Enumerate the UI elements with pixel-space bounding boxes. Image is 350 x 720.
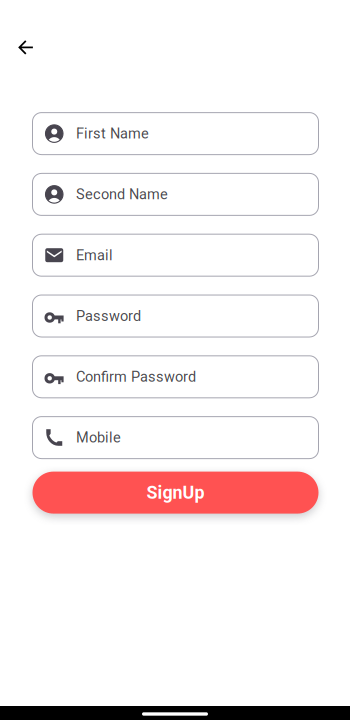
staticText: Second Name	[76, 186, 168, 203]
button[interactable]: Second Name	[32, 173, 318, 215]
staticText: Password	[76, 307, 141, 324]
staticText: First Name	[76, 125, 149, 142]
button[interactable]: Confirm Password	[32, 356, 318, 398]
button[interactable]: First Name	[32, 113, 318, 155]
staticText: Email	[76, 247, 113, 264]
button[interactable]: Email	[32, 234, 318, 276]
button[interactable]: SignUp	[32, 472, 318, 514]
button[interactable]: Back	[9, 30, 43, 64]
button[interactable]: Password	[32, 295, 318, 337]
button[interactable]: Mobile	[32, 417, 318, 459]
staticText: SignUp	[146, 482, 204, 503]
staticText: Confirm Password	[76, 368, 196, 385]
staticText: Mobile	[76, 429, 121, 446]
